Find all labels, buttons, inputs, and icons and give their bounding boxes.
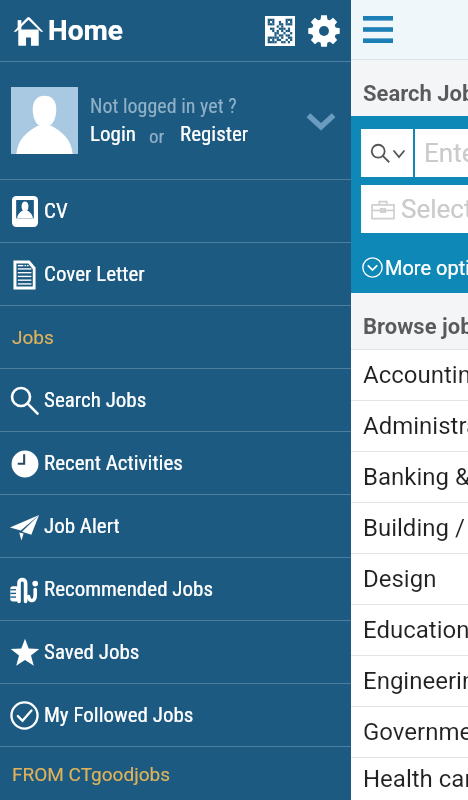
button[interactable]: Settings <box>301 0 346 61</box>
staticText: Not logged in yet ? <box>90 94 237 117</box>
button[interactable]: Government <box>0 707 468 757</box>
button[interactable]: Administration <box>0 401 468 451</box>
staticText: Register <box>180 122 249 147</box>
staticText: Administration <box>363 412 468 440</box>
staticText: Cover Letter <box>44 262 145 287</box>
staticText: Select job function <box>401 194 468 224</box>
staticText: Login <box>90 122 136 147</box>
staticText: Building / Construction <box>363 514 468 542</box>
button[interactable]: Accounting <box>0 350 468 400</box>
button[interactable]: Select job function <box>361 185 468 233</box>
staticText: Recommended Jobs <box>44 577 213 602</box>
staticText: My Followed Jobs <box>44 703 194 728</box>
button[interactable]: Recent Activities <box>0 432 351 494</box>
button[interactable]: Engineering <box>0 656 468 706</box>
button[interactable]: Menu <box>348 0 407 59</box>
button[interactable]: Search type <box>361 129 413 177</box>
staticText: CV <box>44 199 68 224</box>
staticText: Browse jobs by function <box>363 314 468 340</box>
button[interactable]: QR code <box>258 0 301 61</box>
button[interactable]: CV <box>0 180 351 242</box>
button[interactable]: Not logged in yet ? <box>0 62 351 179</box>
staticText: Search Jobs <box>363 81 468 107</box>
staticText: Recent Activities <box>44 451 183 476</box>
staticText: FROM CTgoodjobs <box>12 763 171 785</box>
button[interactable]: Cover Letter <box>0 243 351 305</box>
button[interactable]: My Followed Jobs <box>0 684 351 746</box>
button[interactable]: Banking & Finance <box>0 452 468 502</box>
staticText: Accounting <box>363 361 468 389</box>
button[interactable]: More options <box>362 250 468 284</box>
button[interactable]: Enter keywords <box>415 129 468 177</box>
button[interactable]: Recommended Jobs <box>0 558 351 620</box>
button[interactable]: Building / Construction <box>0 503 468 553</box>
staticText: or <box>149 125 165 147</box>
staticText: Search Jobs <box>44 388 147 413</box>
staticText: Home <box>48 14 123 47</box>
button[interactable]: Search Jobs <box>0 369 351 431</box>
staticText: Saved Jobs <box>44 640 140 665</box>
staticText: Government <box>363 718 468 746</box>
staticText: Engineering <box>363 667 468 695</box>
staticText: More options <box>385 256 468 279</box>
staticText: Design <box>363 565 437 593</box>
staticText: Jobs <box>12 326 54 348</box>
staticText: Education <box>363 616 468 644</box>
button[interactable]: Education <box>0 605 468 655</box>
staticText: Enter keywords <box>424 138 468 168</box>
staticText: Health care <box>363 765 468 793</box>
button[interactable]: Saved Jobs <box>0 621 351 683</box>
staticText: Banking & Finance <box>363 463 468 491</box>
button[interactable]: Job Alert <box>0 495 351 557</box>
button[interactable]: Design <box>0 554 468 604</box>
staticText: Job Alert <box>44 514 120 539</box>
button[interactable]: Health care <box>0 758 468 800</box>
